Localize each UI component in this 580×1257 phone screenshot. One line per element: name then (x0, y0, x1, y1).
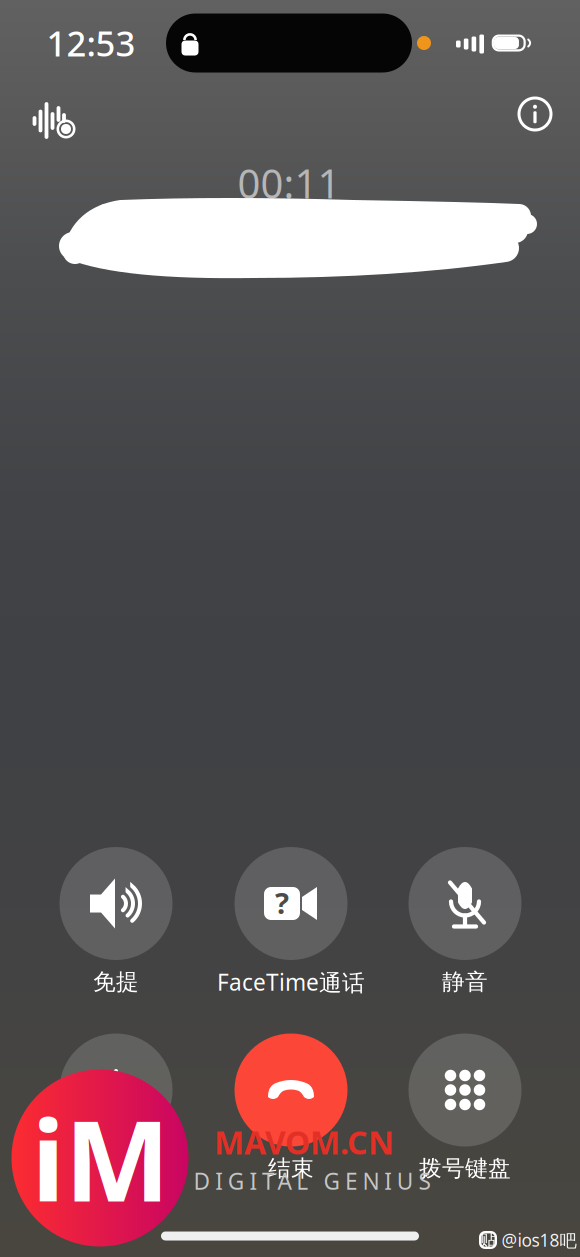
staticText: 贴 (480, 1230, 496, 1250)
staticText: FaceTime通话 (217, 967, 365, 997)
staticText: 静音 (442, 968, 488, 996)
button[interactable]: ? (191, 847, 391, 1007)
staticText: 免提 (93, 968, 139, 996)
button[interactable]: 添加通话 (16, 1033, 216, 1193)
button[interactable]: Call details (502, 81, 568, 147)
button[interactable]: Live Voicemail (16, 86, 88, 152)
button[interactable]: 拨号键盘 (365, 1033, 565, 1193)
staticText: DIGITAL GENIUS (194, 1166, 430, 1196)
staticText: 结束 (268, 1155, 314, 1182)
button[interactable]: 免提 (16, 847, 216, 1007)
staticText: MAVOM.CN (214, 1121, 394, 1163)
button[interactable]: 结束 (191, 1033, 391, 1193)
staticText: @ios18吧 (501, 1228, 576, 1251)
staticText: ? (275, 883, 289, 922)
staticText: 拨号键盘 (419, 1155, 511, 1182)
staticText: 00:11 (237, 156, 340, 209)
staticText: 添加通话 (70, 1155, 162, 1182)
button[interactable]: 静音 (365, 847, 565, 1007)
staticText: iM (31, 1084, 170, 1232)
staticText: 12:53 (46, 20, 135, 66)
